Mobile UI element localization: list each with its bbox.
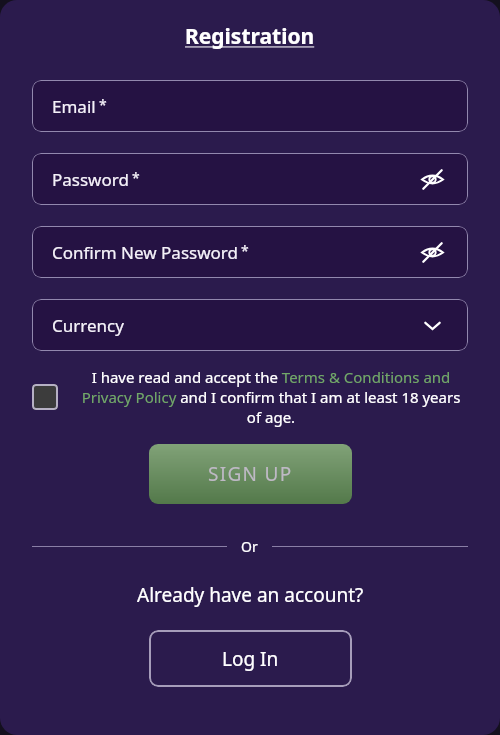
button[interactable]: Show password xyxy=(416,236,448,268)
button[interactable]: Show password xyxy=(416,163,448,195)
staticText: Password xyxy=(52,168,129,191)
button[interactable]: Confirm New Password xyxy=(32,226,468,278)
button[interactable]: Password xyxy=(32,153,468,205)
button[interactable]: Currency xyxy=(32,299,468,351)
staticText: I have read and accept the Terms & Condi… xyxy=(74,367,468,427)
button[interactable]: Email xyxy=(32,80,468,132)
staticText: Registration xyxy=(185,22,315,51)
staticText: Log In xyxy=(222,646,279,672)
staticText: Or xyxy=(241,537,258,556)
button[interactable]: Accept terms and conditions xyxy=(32,367,468,427)
staticText: SIGN UP xyxy=(208,461,293,487)
staticText: * xyxy=(99,95,107,114)
button[interactable]: Log In xyxy=(149,630,352,687)
staticText: Email xyxy=(52,95,96,118)
staticText: Confirm New Password xyxy=(52,241,238,264)
staticText: Already have an account? xyxy=(137,582,364,608)
staticText: Currency xyxy=(52,314,124,337)
staticText: * xyxy=(241,241,249,260)
button[interactable]: Accept terms and conditions xyxy=(32,384,58,410)
button[interactable]: SIGN UP xyxy=(149,444,352,504)
button[interactable]: Select currency xyxy=(416,309,448,341)
staticText: * xyxy=(132,168,140,187)
